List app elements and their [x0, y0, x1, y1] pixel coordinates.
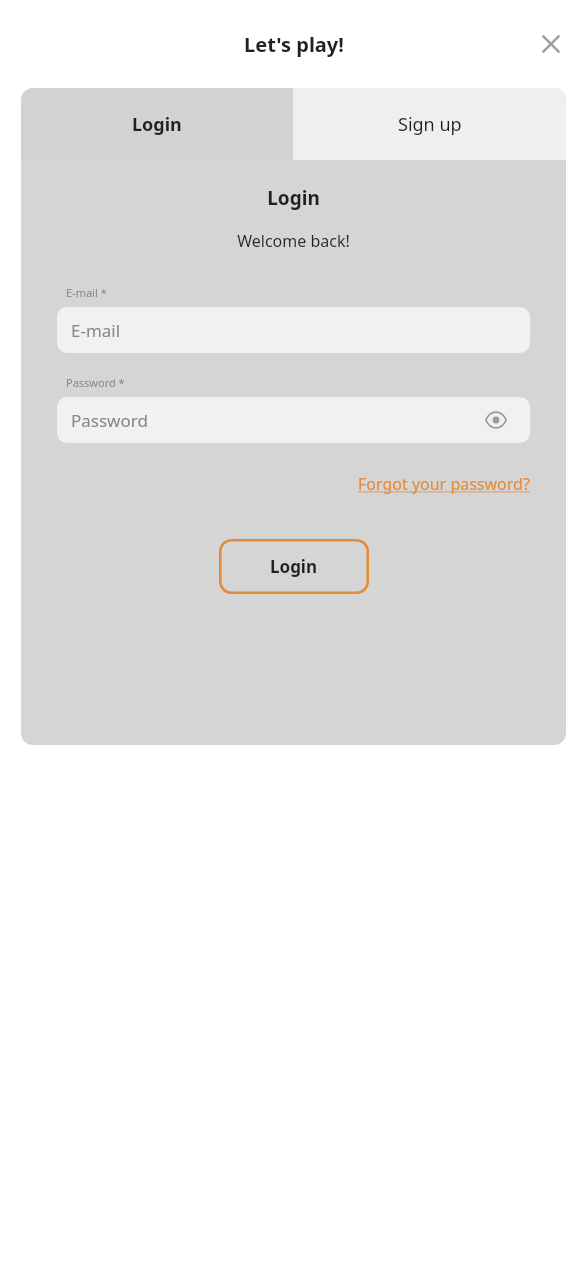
staticText: Let's play!: [244, 31, 344, 58]
button[interactable]: Forgot your password?: [358, 473, 530, 495]
button[interactable]: Login: [219, 539, 369, 594]
button[interactable]: Show password: [482, 406, 510, 434]
staticText: Password: [71, 409, 148, 432]
button[interactable]: E-mail: [57, 307, 530, 353]
button[interactable]: Login: [21, 88, 293, 160]
staticText: Welcome back!: [57, 230, 530, 252]
staticText: E-mail: [71, 319, 121, 342]
button[interactable]: Close: [527, 20, 575, 68]
button[interactable]: Password: [57, 397, 530, 443]
button[interactable]: Sign up: [293, 88, 566, 160]
staticText: Login: [132, 112, 182, 137]
staticText: E-mail *: [66, 285, 107, 300]
staticText: Sign up: [398, 112, 462, 137]
staticText: Login: [57, 185, 530, 211]
staticText: Login: [270, 555, 318, 578]
staticText: Password *: [66, 375, 125, 390]
